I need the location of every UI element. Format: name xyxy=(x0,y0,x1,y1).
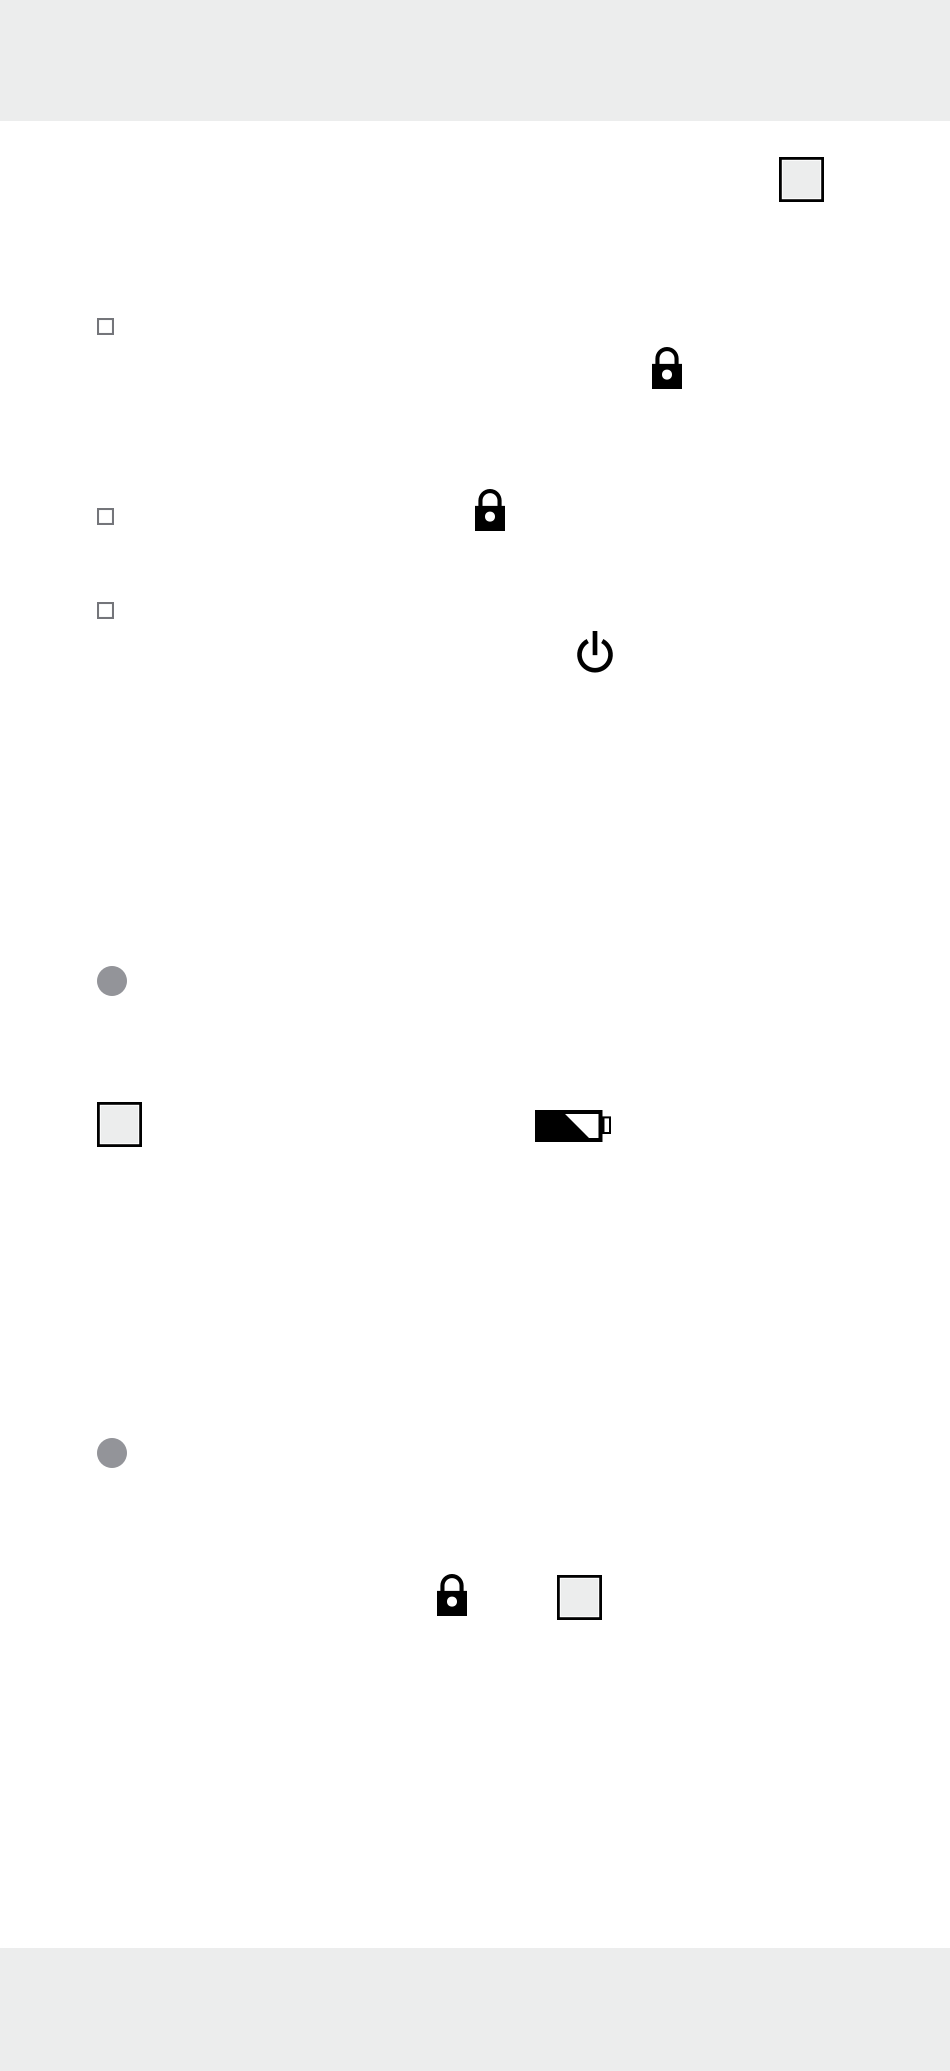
button[interactable]: Power xyxy=(0,602,950,694)
button[interactable]: Locked entry, third xyxy=(0,1574,950,1620)
button[interactable]: Title xyxy=(0,121,950,197)
button[interactable]: Locked entry, first xyxy=(0,318,950,458)
button[interactable]: Battery level xyxy=(0,1102,950,1148)
button[interactable]: New item xyxy=(0,121,950,197)
button[interactable]: Locked entry, second xyxy=(0,489,950,583)
